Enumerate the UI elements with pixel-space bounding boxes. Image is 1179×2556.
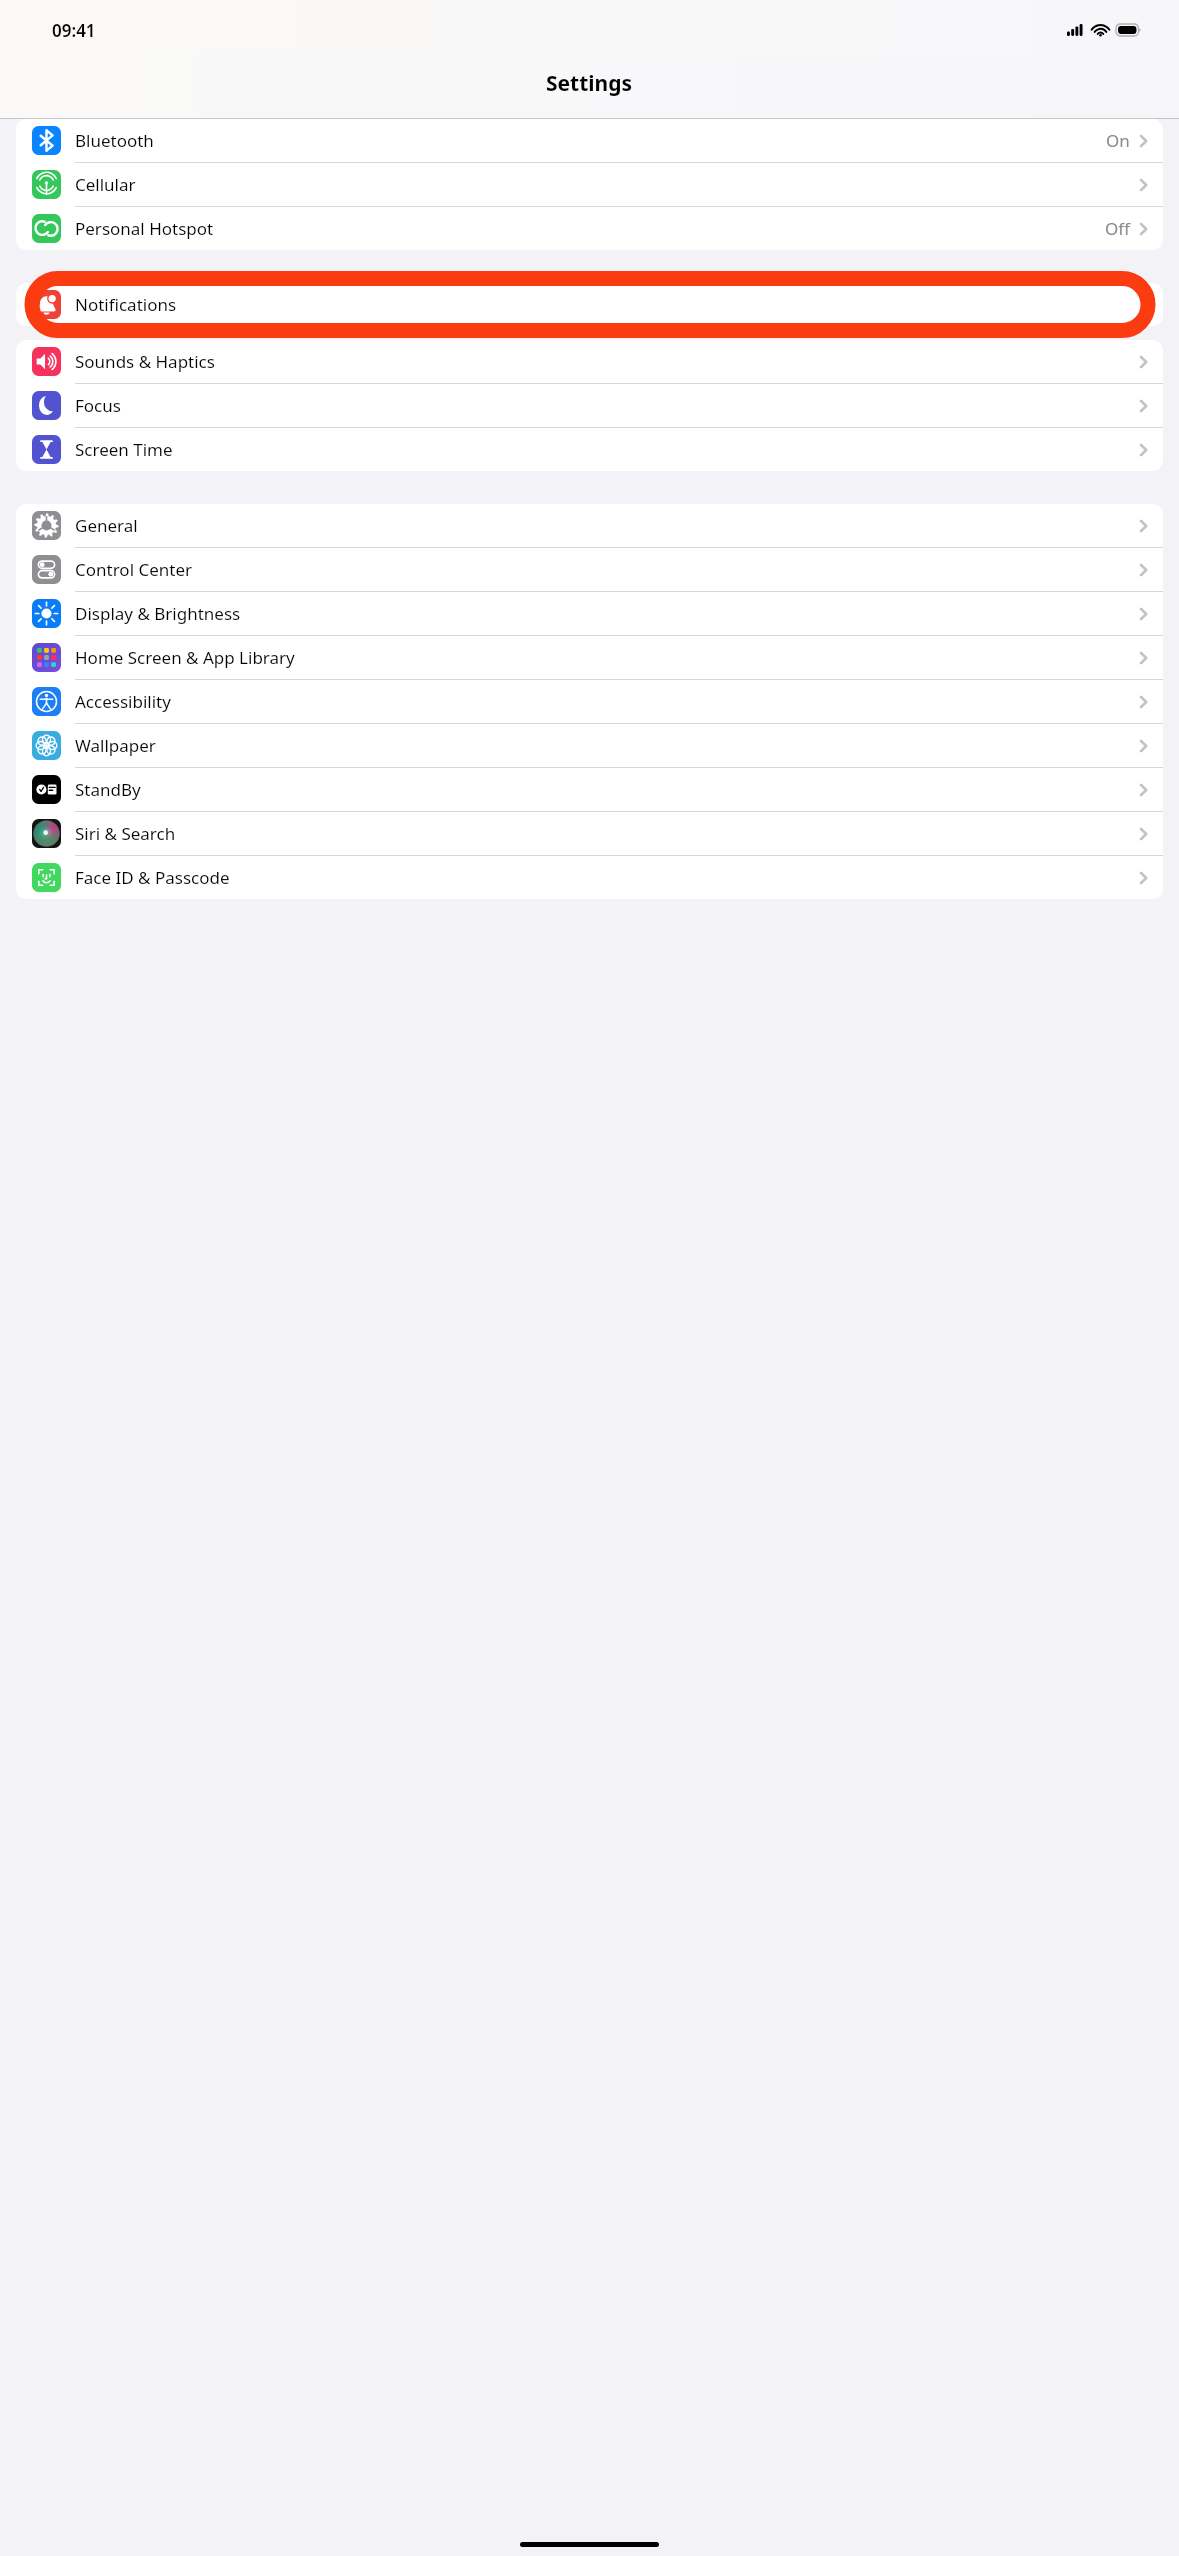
button[interactable]: Display & Brightness <box>16 592 1163 636</box>
button[interactable]: Home Screen & App Library <box>16 636 1163 680</box>
button[interactable]: StandBy <box>16 768 1163 812</box>
staticText: Off <box>1105 217 1130 240</box>
staticText: Wallpaper <box>75 734 156 757</box>
button[interactable]: Face ID & Passcode <box>16 856 1163 899</box>
staticText: Bluetooth <box>75 129 154 152</box>
staticText: Sounds & Haptics <box>75 350 215 373</box>
staticText: Settings <box>546 69 633 98</box>
staticText: 09:41 <box>52 19 96 42</box>
button[interactable]: Personal Hotspot <box>16 207 1163 250</box>
staticText: Focus <box>75 394 121 417</box>
staticText: Screen Time <box>75 438 173 461</box>
button[interactable]: Sounds & Haptics <box>16 340 1163 384</box>
button[interactable]: Control Center <box>16 548 1163 592</box>
button[interactable]: Notifications <box>16 283 1163 326</box>
button[interactable]: Bluetooth <box>16 119 1163 163</box>
button[interactable]: Wallpaper <box>16 724 1163 768</box>
staticText: General <box>75 514 138 537</box>
staticText: Display & Brightness <box>75 602 241 625</box>
staticText: On <box>1106 129 1130 152</box>
staticText: Face ID & Passcode <box>75 866 230 889</box>
button[interactable]: Siri & Search <box>16 812 1163 856</box>
button[interactable]: Focus <box>16 384 1163 428</box>
button[interactable]: Accessibility <box>16 680 1163 724</box>
staticText: Notifications <box>75 293 177 316</box>
other: Highlight <box>0 283 1179 326</box>
button[interactable]: General <box>16 504 1163 548</box>
staticText: Accessibility <box>75 690 171 713</box>
staticText: Personal Hotspot <box>75 217 214 240</box>
staticText: Siri & Search <box>75 822 176 845</box>
staticText: Control Center <box>75 558 193 581</box>
button[interactable]: Cellular <box>16 163 1163 207</box>
staticText: Home Screen & App Library <box>75 646 295 669</box>
button[interactable]: Screen Time <box>16 428 1163 471</box>
staticText: StandBy <box>75 778 141 801</box>
staticText: Cellular <box>75 173 136 196</box>
